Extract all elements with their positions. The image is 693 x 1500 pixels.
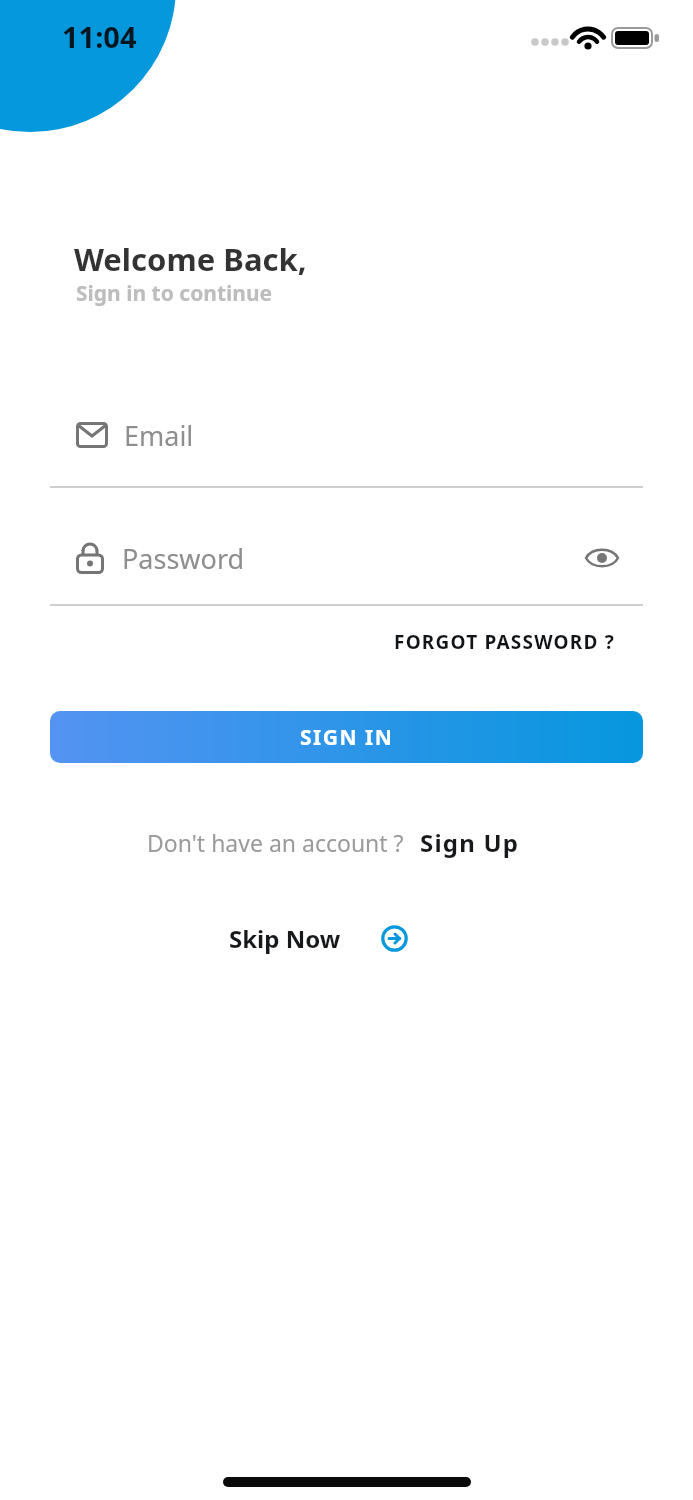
staticText: Email bbox=[124, 417, 194, 454]
staticText: Don't have an account ? bbox=[147, 827, 404, 858]
staticText: SIGN IN bbox=[300, 723, 394, 752]
button[interactable]: FORGOT PASSWORD ? bbox=[0, 629, 615, 655]
staticText: Password bbox=[122, 540, 245, 577]
staticText: FORGOT PASSWORD ? bbox=[394, 629, 615, 655]
button[interactable]: Skip Now bbox=[0, 922, 637, 955]
button[interactable]: SIGN IN bbox=[50, 711, 643, 763]
staticText: Welcome Back, bbox=[74, 238, 307, 280]
button[interactable]: Password bbox=[76, 536, 693, 580]
button[interactable]: Sign Up bbox=[420, 826, 520, 859]
staticText: 11:04 bbox=[62, 17, 137, 56]
button[interactable] bbox=[584, 545, 620, 571]
staticText: Sign in to continue bbox=[76, 279, 273, 308]
button[interactable]: Email bbox=[76, 414, 693, 456]
staticText: Skip Now bbox=[229, 922, 341, 955]
